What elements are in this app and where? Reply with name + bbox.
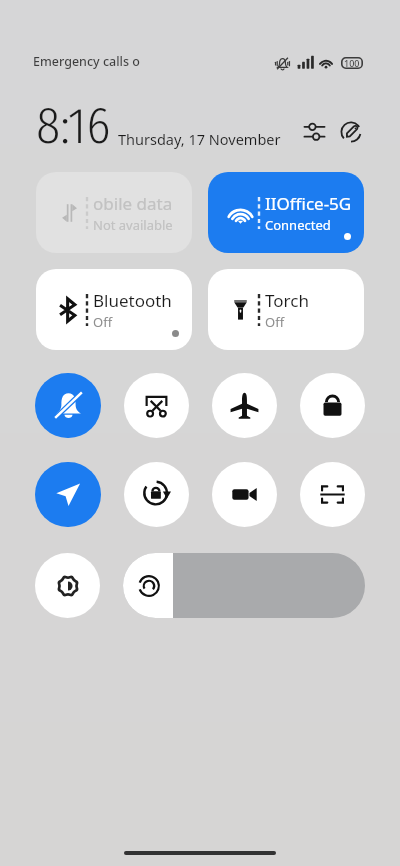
staticText: Off (265, 313, 285, 331)
button[interactable]: Brightness slider (123, 553, 365, 618)
button[interactable]: Torch (208, 269, 364, 350)
button[interactable]: Silent (35, 373, 101, 438)
staticText: Emergency calls o (33, 53, 140, 70)
button[interactable]: Scan QR code (300, 462, 365, 527)
button[interactable]: Auto rotate (124, 462, 189, 527)
staticText: Off (93, 313, 113, 331)
button[interactable]: IIOffice-5G (208, 172, 364, 253)
staticText: Torch (265, 289, 309, 312)
staticText: obile data (93, 192, 173, 215)
staticText: IIOffice-5G (265, 192, 352, 215)
staticText: 8:16 (36, 96, 111, 156)
button[interactable]: Screen recorder (124, 373, 189, 438)
button[interactable]: Brightness (35, 553, 100, 618)
staticText: 100 (344, 57, 360, 69)
button[interactable]: Airplane mode (212, 373, 277, 438)
button[interactable]: Edit tiles (336, 117, 366, 147)
button[interactable]: Location (35, 462, 101, 527)
staticText: Connected (265, 216, 331, 234)
button[interactable]: obile data (36, 172, 192, 253)
staticText: Thursday, 17 November (118, 129, 281, 149)
button[interactable]: Settings (299, 117, 329, 147)
staticText: Bluetooth (93, 289, 172, 312)
button[interactable]: Record screen (212, 462, 277, 527)
button[interactable]: Lock screen (300, 373, 365, 438)
button[interactable]: Bluetooth (36, 269, 192, 350)
staticText: Not available (93, 216, 173, 234)
